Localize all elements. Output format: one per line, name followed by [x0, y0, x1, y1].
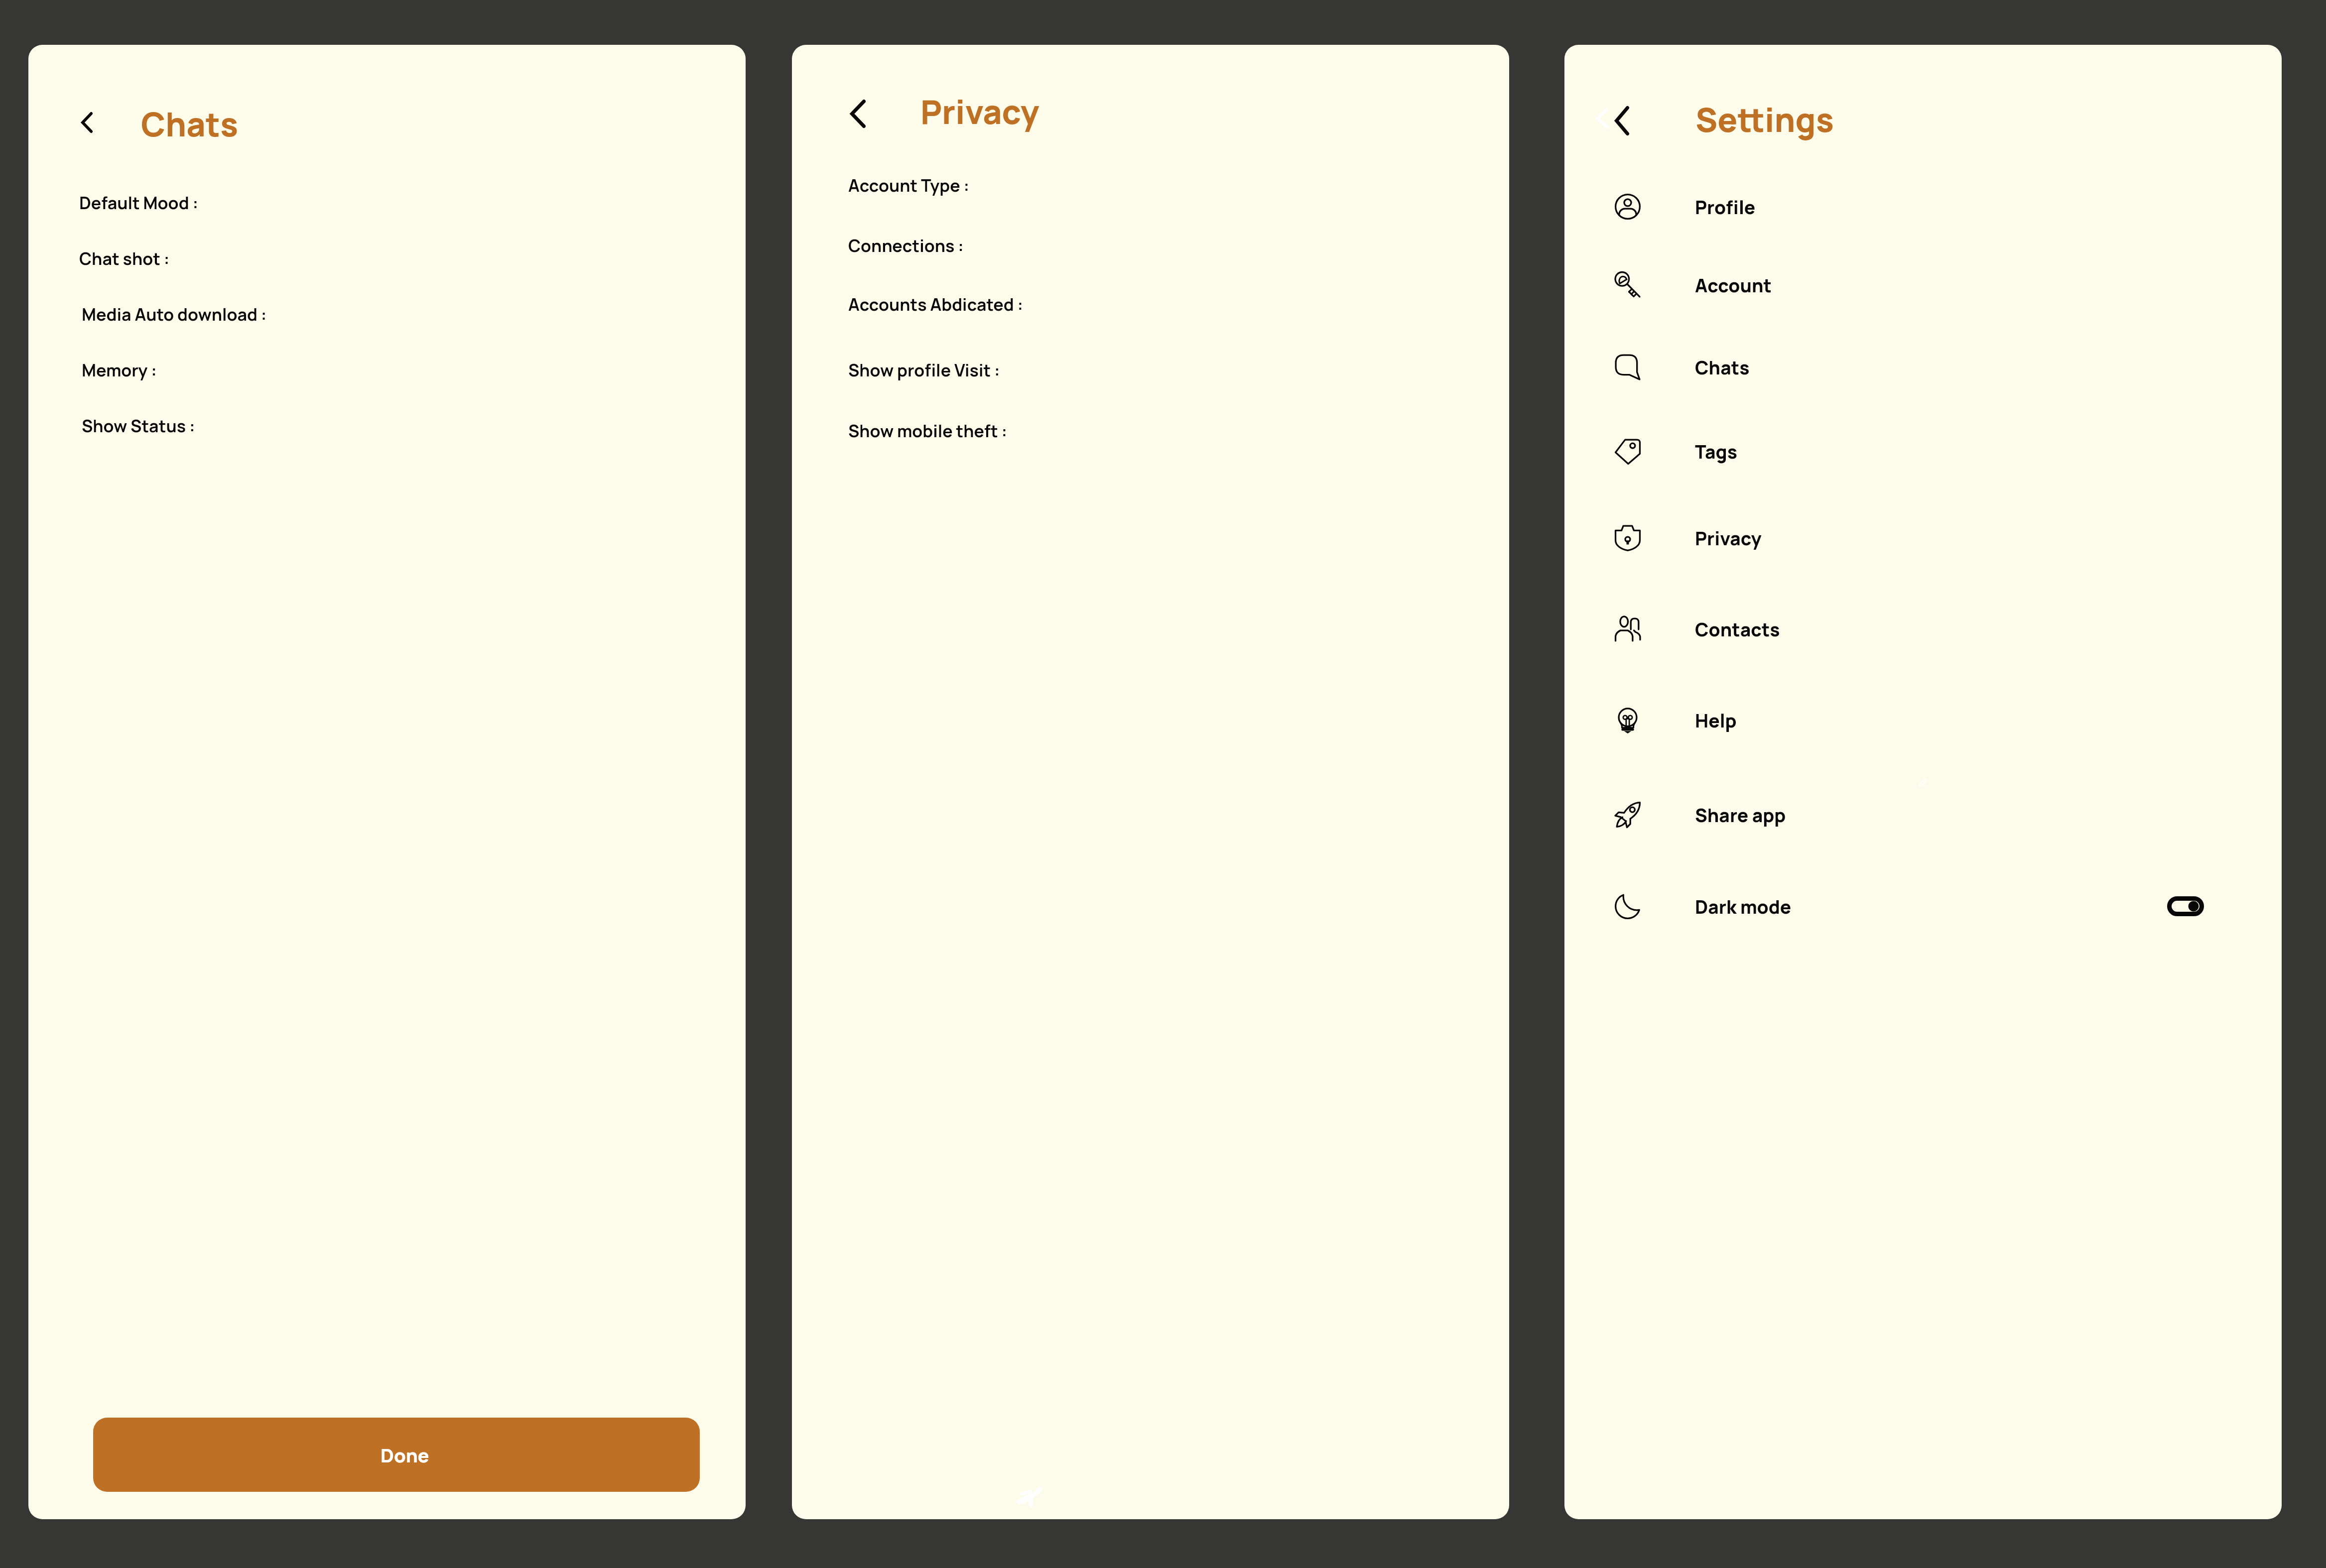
- button[interactable]: [1564, 787, 2282, 843]
- button[interactable]: [1564, 878, 2282, 934]
- button[interactable]: [1564, 339, 2282, 395]
- staticText: Dark mode: [1695, 894, 1792, 920]
- staticText: Profile: [1695, 195, 1756, 220]
- staticText: Tags: [1695, 439, 1737, 465]
- button[interactable]: Back: [843, 93, 873, 135]
- staticText: Account: [1695, 273, 1772, 298]
- staticText: Done: [381, 1442, 429, 1468]
- staticText: Help: [1695, 708, 1737, 733]
- staticText: Show Status :: [82, 414, 195, 437]
- staticText: Chats: [1695, 355, 1750, 380]
- staticText: Default Mood :: [79, 191, 199, 214]
- staticText: Media Auto download :: [82, 303, 267, 326]
- staticText: Chats: [141, 102, 239, 146]
- staticText: Accounts Abdicated :: [848, 293, 1024, 316]
- button[interactable]: Done: [93, 1418, 700, 1492]
- staticText: Memory :: [82, 359, 157, 381]
- button[interactable]: [1564, 257, 2282, 313]
- staticText: Show profile Visit :: [848, 359, 1000, 381]
- staticText: Privacy: [1695, 526, 1762, 551]
- staticText: Account Type :: [848, 174, 970, 197]
- button[interactable]: [1564, 423, 2282, 479]
- button[interactable]: Dark mode toggle: [2167, 896, 2204, 916]
- button[interactable]: Back: [74, 105, 100, 140]
- staticText: Contacts: [1695, 617, 1780, 642]
- button[interactable]: Back: [1608, 99, 1636, 142]
- staticText: Show mobile theft :: [848, 419, 1008, 442]
- button[interactable]: [1564, 601, 2282, 657]
- staticText: Privacy: [920, 89, 1039, 134]
- staticText: Chat shot :: [79, 247, 170, 270]
- button[interactable]: [1564, 510, 2282, 566]
- staticText: Settings: [1695, 97, 1834, 142]
- staticText: Connections :: [848, 234, 964, 257]
- button[interactable]: [1564, 179, 2282, 235]
- staticText: Share app: [1695, 803, 1786, 828]
- button[interactable]: [1564, 692, 2282, 748]
